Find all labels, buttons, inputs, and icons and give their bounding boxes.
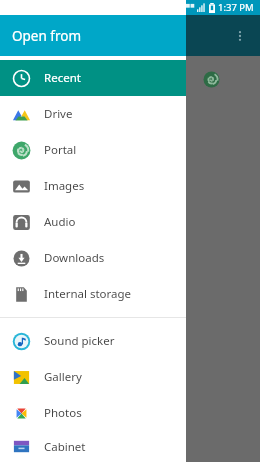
button[interactable]: Open from	[0, 15, 186, 56]
button[interactable]: Cabinet	[0, 431, 186, 462]
button[interactable]: Photos	[0, 395, 186, 431]
staticText: Downloads	[44, 250, 105, 266]
button[interactable]: Sound picker	[0, 323, 186, 359]
staticText: Photos	[44, 405, 82, 421]
button[interactable]: Downloads	[0, 240, 186, 276]
button[interactable]: Drive	[0, 96, 186, 132]
button[interactable]: Gallery	[0, 359, 186, 395]
button[interactable]: Images	[0, 168, 186, 204]
staticText: Open from	[12, 27, 82, 45]
staticText: 1:37 PM	[218, 1, 254, 14]
staticText: Cabinet	[44, 439, 86, 455]
button[interactable]: Internal storage	[0, 276, 186, 312]
button[interactable]: Audio	[0, 204, 186, 240]
staticText: Portal	[44, 142, 77, 158]
button[interactable]: More options	[226, 22, 254, 50]
staticText: Gallery	[44, 369, 82, 385]
staticText: Images	[44, 178, 85, 194]
staticText: Audio	[44, 214, 76, 230]
staticText: Recent	[44, 70, 81, 86]
button[interactable]: Recent	[0, 60, 186, 96]
button[interactable]: Portal	[0, 132, 186, 168]
staticText: Sound picker	[44, 333, 115, 349]
staticText: Drive	[44, 106, 73, 122]
staticText: Internal storage	[44, 286, 132, 302]
